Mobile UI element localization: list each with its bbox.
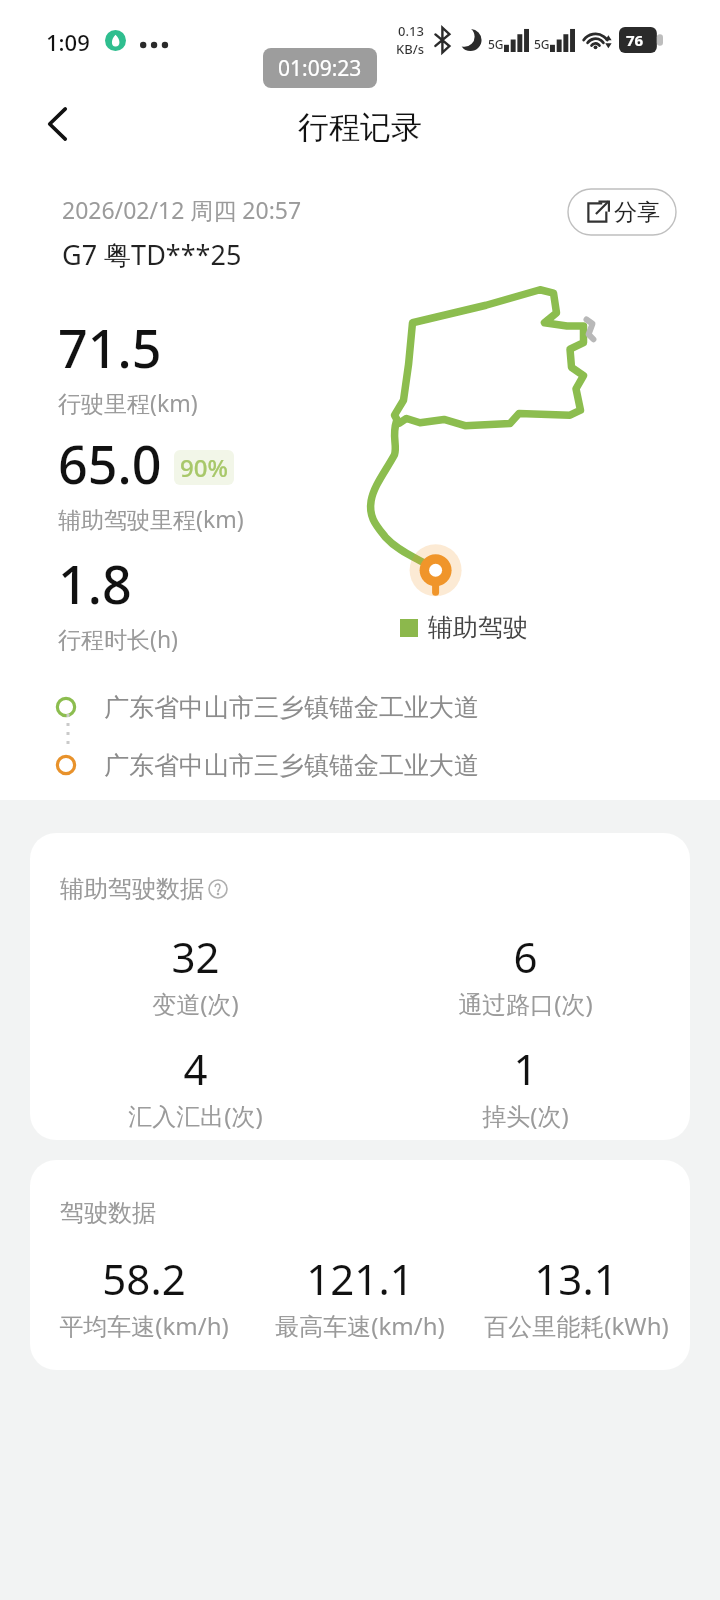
staticText: 通过路口(次) xyxy=(458,987,593,1020)
staticText: 行驶里程(km) xyxy=(58,387,198,418)
button[interactable]: 分享 xyxy=(568,189,676,235)
staticText: 平均车速(km/h) xyxy=(59,1309,229,1342)
staticText: 驾驶数据 xyxy=(60,1198,156,1228)
staticText: 变道(次) xyxy=(152,987,239,1020)
staticText: KB/s xyxy=(396,40,425,58)
button[interactable]: 辅助驾驶数据 xyxy=(30,833,690,1140)
staticText: 辅助驾驶里程(km) xyxy=(58,503,244,534)
staticText: 4 xyxy=(183,1040,208,1097)
staticText: G7 粤TD***25 xyxy=(62,236,242,273)
staticText: 58.2 xyxy=(102,1250,186,1307)
staticText: 32 xyxy=(171,928,220,985)
staticText: 6 xyxy=(513,928,538,985)
staticText: 90% xyxy=(180,451,228,484)
button[interactable]: Back xyxy=(26,92,90,156)
staticText: 辅助驾驶 xyxy=(428,612,528,643)
staticText: 分享 xyxy=(614,198,660,227)
staticText: 广东省中山市三乡镇锚金工业大道 xyxy=(104,692,479,723)
staticText: 2026/02/12 周四 20:57 xyxy=(62,194,302,225)
staticText: 最高车速(km/h) xyxy=(275,1309,445,1342)
button[interactable]: 驾驶数据 xyxy=(30,1160,690,1370)
staticText: 1 xyxy=(513,1040,538,1097)
staticText: 辅助驾驶数据 xyxy=(60,874,204,904)
staticText: 0.13 xyxy=(398,22,424,40)
staticText: 65.0 xyxy=(58,428,162,499)
staticText: 掉头(次) xyxy=(482,1099,569,1132)
staticText: 5G xyxy=(534,36,550,52)
staticText: 1.8 xyxy=(58,548,132,619)
staticText: 行程时长(h) xyxy=(58,623,179,654)
staticText: 行程记录 xyxy=(298,108,422,147)
staticText: 广东省中山市三乡镇锚金工业大道 xyxy=(104,750,479,781)
staticText: 76 xyxy=(626,30,644,50)
staticText: 1:09 xyxy=(46,27,90,57)
staticText: 121.1 xyxy=(306,1250,414,1307)
staticText: 01:09:23 xyxy=(278,54,362,83)
staticText: 汇入汇出(次) xyxy=(128,1099,263,1132)
staticText: 百公里能耗(kWh) xyxy=(484,1309,669,1342)
staticText: 13.1 xyxy=(534,1250,618,1307)
staticText: 5G xyxy=(488,36,504,52)
staticText: 71.5 xyxy=(58,312,162,383)
